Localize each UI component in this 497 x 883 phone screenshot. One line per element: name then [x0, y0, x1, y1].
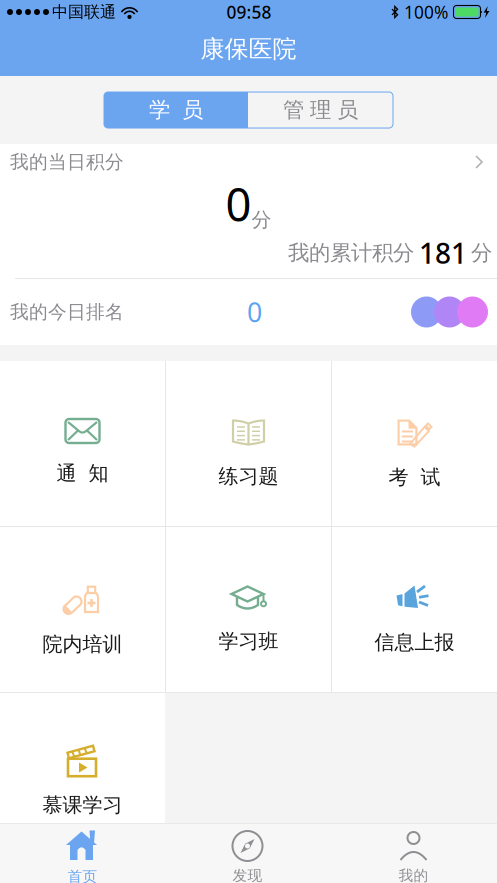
- staticText: 我的累计积分: [288, 240, 414, 266]
- staticText: 练习题: [218, 464, 278, 489]
- staticText: 中国联通: [52, 2, 116, 22]
- staticText: 我的今日排名: [10, 300, 124, 323]
- staticText: 管 理 员: [283, 97, 358, 123]
- staticText: 信息上报: [374, 630, 454, 655]
- button[interactable]: 首页: [0, 823, 165, 883]
- staticText: 院内培训: [42, 632, 122, 657]
- staticText: 0: [247, 294, 262, 330]
- button[interactable]: 考 试: [332, 361, 497, 526]
- staticText: 康保医院: [200, 34, 296, 64]
- button[interactable]: 院内培训: [0, 527, 165, 692]
- staticText: 学 员: [149, 97, 203, 123]
- button[interactable]: 信息上报: [332, 527, 497, 692]
- staticText: 分: [471, 240, 492, 266]
- staticText: 分: [251, 207, 271, 232]
- button[interactable]: 发现: [165, 823, 330, 883]
- button[interactable]: 我的: [330, 823, 497, 883]
- staticText: 首页: [67, 867, 97, 883]
- staticText: 我的: [398, 866, 428, 883]
- button[interactable]: 练习题: [166, 361, 331, 526]
- staticText: 我的当日积分: [10, 150, 124, 173]
- staticText: 通 知: [56, 461, 108, 486]
- staticText: 100%: [404, 0, 448, 23]
- button[interactable]: 慕课学习: [0, 693, 165, 823]
- button[interactable]: 我的当日积分: [0, 144, 497, 278]
- staticText: 181: [419, 234, 467, 272]
- staticText: 09:58: [226, 0, 271, 23]
- button[interactable]: 学 员: [104, 92, 248, 128]
- staticText: 0: [225, 174, 251, 234]
- button[interactable]: 我的今日排名: [0, 279, 497, 345]
- button[interactable]: 学习班: [166, 527, 331, 692]
- button[interactable]: 管 理 员: [248, 92, 393, 128]
- staticText: 学习班: [218, 629, 278, 654]
- staticText: 发现: [232, 866, 262, 883]
- button[interactable]: 通 知: [0, 361, 165, 526]
- staticText: 考 试: [388, 465, 440, 490]
- staticText: 慕课学习: [42, 793, 122, 817]
